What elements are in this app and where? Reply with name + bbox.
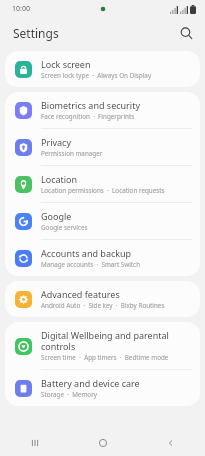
staticText: Battery and device care xyxy=(41,377,140,389)
staticText: Privacy xyxy=(41,136,72,148)
button[interactable]: Search xyxy=(174,21,198,45)
staticText: 10:00 xyxy=(12,4,30,14)
button[interactable]: Recents xyxy=(0,429,69,456)
staticText: Google xyxy=(41,210,72,222)
button[interactable]: Lock screen xyxy=(5,51,200,87)
staticText: Location xyxy=(41,173,78,185)
button[interactable]: Google xyxy=(5,203,200,239)
staticText: Manage accounts · Smart Switch xyxy=(41,260,141,269)
button[interactable]: Back xyxy=(137,429,205,456)
button[interactable]: Home xyxy=(69,429,137,456)
staticText: Screen time · App timers · Bedtime mode xyxy=(41,353,169,362)
staticText: Advanced features xyxy=(41,288,120,300)
staticText: Digital Wellbeing and parental controls xyxy=(41,329,190,352)
staticText: Google services xyxy=(41,223,88,232)
staticText: Storage · Memory xyxy=(41,390,97,399)
button[interactable]: Battery and device care xyxy=(5,370,200,406)
button[interactable]: Privacy xyxy=(5,129,200,165)
staticText: Location permissions · Location requests xyxy=(41,186,165,195)
staticText: Settings xyxy=(13,25,59,41)
staticText: Accounts and backup xyxy=(41,247,132,259)
staticText: Lock screen xyxy=(41,58,91,70)
button[interactable]: Location xyxy=(5,166,200,202)
button[interactable]: Advanced features xyxy=(5,281,200,317)
button[interactable]: Accounts and backup xyxy=(5,240,200,276)
staticText: Face recognition · Fingerprints xyxy=(41,112,135,121)
staticText: Permission manager xyxy=(41,149,103,158)
button[interactable]: Biometrics and security xyxy=(5,92,200,128)
staticText: Biometrics and security xyxy=(41,99,141,111)
staticText: Android Auto · Side key · Bixby Routines xyxy=(41,301,165,310)
staticText: Screen lock type · Always On Display xyxy=(41,71,152,80)
button[interactable]: Digital Wellbeing and parental controls xyxy=(5,322,200,369)
